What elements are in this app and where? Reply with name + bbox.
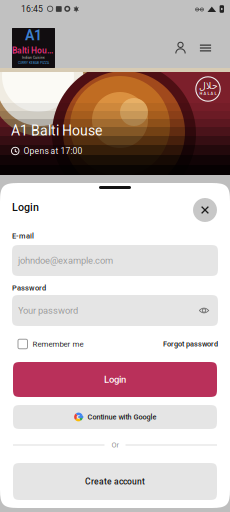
staticText: حلال [198, 80, 217, 91]
staticText: Remember me [32, 339, 83, 349]
button[interactable]: Menu [193, 35, 218, 60]
staticText: Create account [85, 476, 145, 486]
button[interactable]: Login [13, 362, 217, 397]
staticText: A1 Balti House [11, 123, 102, 139]
staticText: Indian Cuisine [22, 56, 45, 59]
staticText: Opens at 17:00 [23, 146, 82, 156]
button[interactable]: Create account [13, 463, 217, 500]
staticText: Login [12, 201, 39, 213]
staticText: Your password [18, 305, 78, 316]
staticText: E-mail [12, 232, 34, 240]
staticText: Login [104, 374, 126, 385]
staticText: A1 [25, 27, 42, 44]
button[interactable]: Continue with Google [13, 405, 217, 429]
staticText: johndoe@example.com [18, 255, 113, 266]
button[interactable]: Show password [197, 303, 211, 317]
staticText: CURRY KEBAB PIZZA [18, 61, 49, 65]
button[interactable]: Account [168, 35, 193, 60]
staticText: Continue with Google [87, 413, 156, 421]
staticText: Forgot password [163, 340, 218, 348]
button[interactable]: Remember me [18, 338, 83, 350]
staticText: 16:45 [21, 4, 43, 14]
staticText: Balti House [12, 46, 55, 56]
staticText: Or [111, 441, 118, 449]
staticText: Password [12, 284, 46, 292]
button[interactable]: Close [193, 198, 217, 222]
staticText: H A L A L [199, 91, 216, 96]
button[interactable]: Forgot password [163, 338, 218, 350]
